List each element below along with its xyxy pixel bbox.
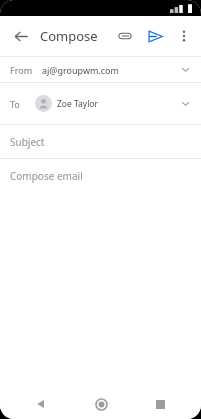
button[interactable]: Attach file [110, 21, 140, 51]
staticText: Compose [40, 27, 98, 45]
button[interactable]: From [0, 57, 201, 82]
staticText: Compose email [10, 169, 83, 183]
button[interactable]: Home [88, 391, 114, 417]
staticText: To [10, 98, 20, 110]
button[interactable]: Zoe Taylor [34, 94, 107, 113]
button[interactable]: Recent apps [147, 391, 173, 417]
button[interactable]: Back [6, 21, 36, 51]
button[interactable]: Compose email [0, 159, 201, 193]
staticText: Zoe Taylor [57, 98, 99, 110]
staticText: Subject [10, 135, 45, 149]
button[interactable]: Subject [0, 125, 201, 158]
staticText: From [10, 64, 33, 76]
button[interactable]: To [0, 83, 201, 124]
staticText: aj@groupwm.com [42, 64, 119, 76]
button[interactable]: More options [170, 22, 198, 50]
button[interactable]: Back [28, 391, 54, 417]
button[interactable]: Send [140, 21, 170, 51]
